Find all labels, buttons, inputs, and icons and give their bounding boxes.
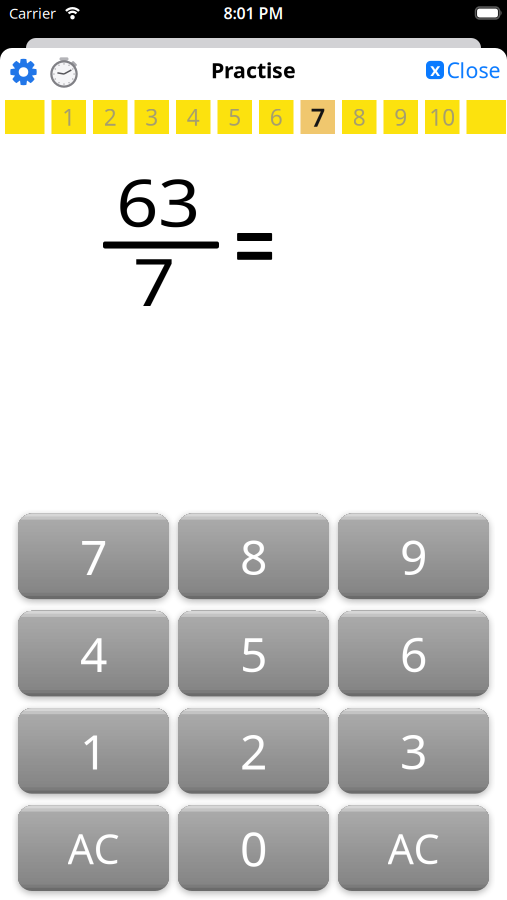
staticText: 7 (135, 238, 172, 324)
staticText: 3 (400, 719, 427, 783)
staticText: 6 (270, 102, 283, 132)
button[interactable]: 6 (338, 611, 489, 696)
button[interactable]: 5 (178, 611, 329, 696)
button[interactable]: 4 (18, 611, 169, 696)
button[interactable]: 0 (178, 805, 329, 891)
staticText: 10 (429, 102, 455, 132)
staticText: 7 (311, 100, 325, 134)
staticText: 0 (240, 816, 267, 880)
staticText: Carrier (9, 3, 56, 23)
button[interactable]: 1 (51, 100, 86, 134)
staticText: 4 (80, 622, 107, 685)
button[interactable]: 2 (178, 708, 329, 794)
button[interactable]: 3 (134, 100, 169, 134)
button[interactable]: 10 (425, 100, 459, 134)
button[interactable]: 4 (176, 100, 210, 134)
button[interactable]: 5 (217, 100, 252, 134)
button[interactable]: 7 (18, 514, 169, 599)
staticText: 63 (121, 158, 195, 245)
button[interactable] (37, 54, 79, 94)
staticText: 3 (145, 102, 158, 132)
button[interactable]: 7 (300, 100, 335, 134)
staticText: 5 (240, 622, 267, 685)
staticText: Close (446, 56, 500, 84)
button[interactable]: 8 (178, 514, 329, 599)
button[interactable]: 1 (18, 708, 169, 794)
staticText: 9 (400, 524, 427, 588)
button[interactable]: AC (338, 805, 489, 891)
staticText: AC (387, 821, 439, 876)
button[interactable]: 2 (93, 100, 127, 134)
staticText: AC (67, 821, 119, 876)
staticText: 8 (353, 102, 366, 132)
button[interactable]: 9 (383, 100, 418, 134)
button[interactable]: 8 (342, 100, 376, 134)
staticText: 2 (240, 719, 267, 783)
button[interactable]: 3 (338, 708, 489, 794)
staticText: 5 (228, 102, 241, 132)
staticText: Practise (211, 56, 296, 84)
staticText: 1 (62, 102, 75, 132)
staticText: 8 (240, 524, 267, 588)
staticText: 8:01 PM (223, 2, 283, 24)
button[interactable] (0, 52, 37, 91)
staticText: 2 (104, 102, 117, 132)
staticText: 1 (80, 719, 107, 783)
staticText: x (430, 57, 440, 81)
staticText: 9 (394, 102, 407, 132)
staticText: 7 (80, 524, 107, 588)
staticText: 4 (187, 102, 200, 132)
button[interactable]: 9 (338, 514, 489, 599)
staticText: 6 (400, 622, 427, 685)
button[interactable]: AC (18, 805, 169, 891)
button[interactable]: x (426, 48, 507, 92)
button[interactable]: 6 (259, 100, 293, 134)
